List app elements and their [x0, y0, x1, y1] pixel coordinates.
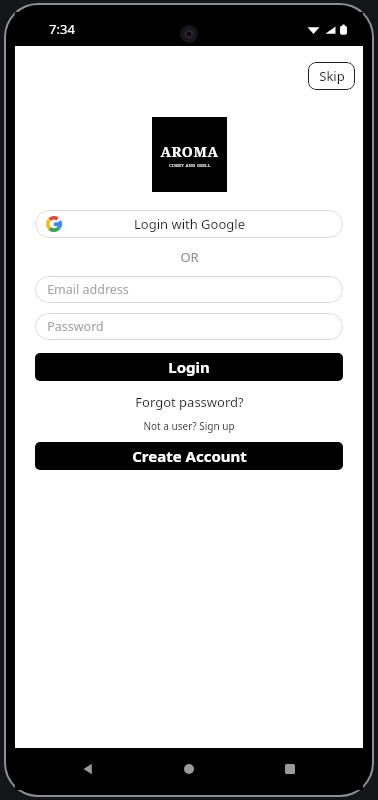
- staticText: Login with Google: [134, 215, 245, 233]
- staticText: Login: [168, 357, 210, 377]
- staticText: CURRY AND GRILL: [169, 163, 211, 168]
- button[interactable]: Login: [35, 353, 343, 381]
- staticText: OR: [180, 248, 199, 266]
- staticText: Skip: [319, 67, 345, 85]
- staticText: Create Account: [132, 446, 247, 466]
- staticText: AROMA: [160, 142, 219, 161]
- staticText: 7:34: [49, 20, 75, 38]
- staticText: Password: [47, 318, 104, 335]
- other: Google logo: [46, 216, 62, 232]
- button[interactable]: Forgot password?: [135, 393, 244, 411]
- button[interactable]: Not a user? Sign up: [143, 419, 235, 433]
- button[interactable]: Login with Google: [35, 210, 343, 238]
- button[interactable]: Skip: [308, 62, 355, 90]
- staticText: Not a user? Sign up: [143, 419, 235, 433]
- staticText: Forgot password?: [135, 393, 244, 411]
- button[interactable]: Create Account: [35, 442, 343, 470]
- button[interactable]: Recent apps: [275, 754, 305, 784]
- button[interactable]: Back: [73, 754, 103, 784]
- staticText: Email address: [47, 281, 129, 298]
- button[interactable]: Email address: [35, 276, 343, 303]
- button[interactable]: Password: [35, 313, 343, 340]
- button[interactable]: Home: [174, 754, 204, 784]
